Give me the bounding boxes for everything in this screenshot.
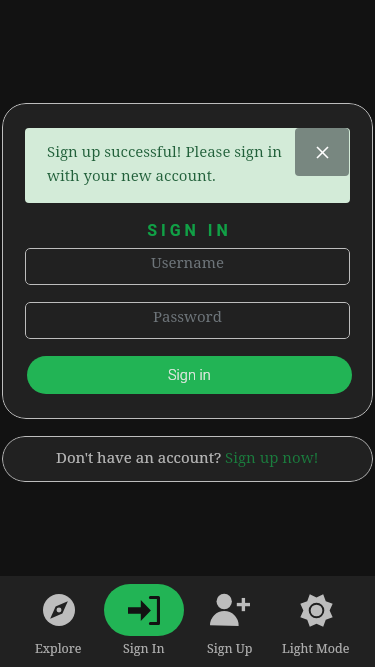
- button[interactable]: Explore: [16, 576, 101, 667]
- staticText: Light Mode: [282, 640, 350, 657]
- staticText: Sign in: [168, 367, 211, 384]
- staticText: Sign In: [123, 640, 165, 657]
- staticText: SIGN IN: [29, 221, 350, 240]
- staticText: Sign Up: [207, 640, 253, 657]
- button[interactable]: Password: [25, 302, 350, 339]
- button[interactable]: Username: [25, 248, 350, 285]
- staticText: Username: [151, 252, 224, 272]
- staticText: Sign up successful! Please sign in with …: [47, 141, 287, 186]
- button[interactable]: Light Mode: [273, 576, 359, 667]
- button[interactable]: Don't have an account? Sign up now!: [2, 436, 373, 482]
- staticText: Password: [153, 306, 222, 326]
- button[interactable]: Sign Up: [187, 576, 273, 667]
- staticText: Explore: [35, 640, 82, 657]
- button[interactable]: Sign In: [101, 576, 187, 667]
- staticText: Don't have an account? Sign up now!: [56, 447, 319, 467]
- button[interactable]: Close: [295, 128, 349, 176]
- button[interactable]: Sign in: [27, 356, 352, 394]
